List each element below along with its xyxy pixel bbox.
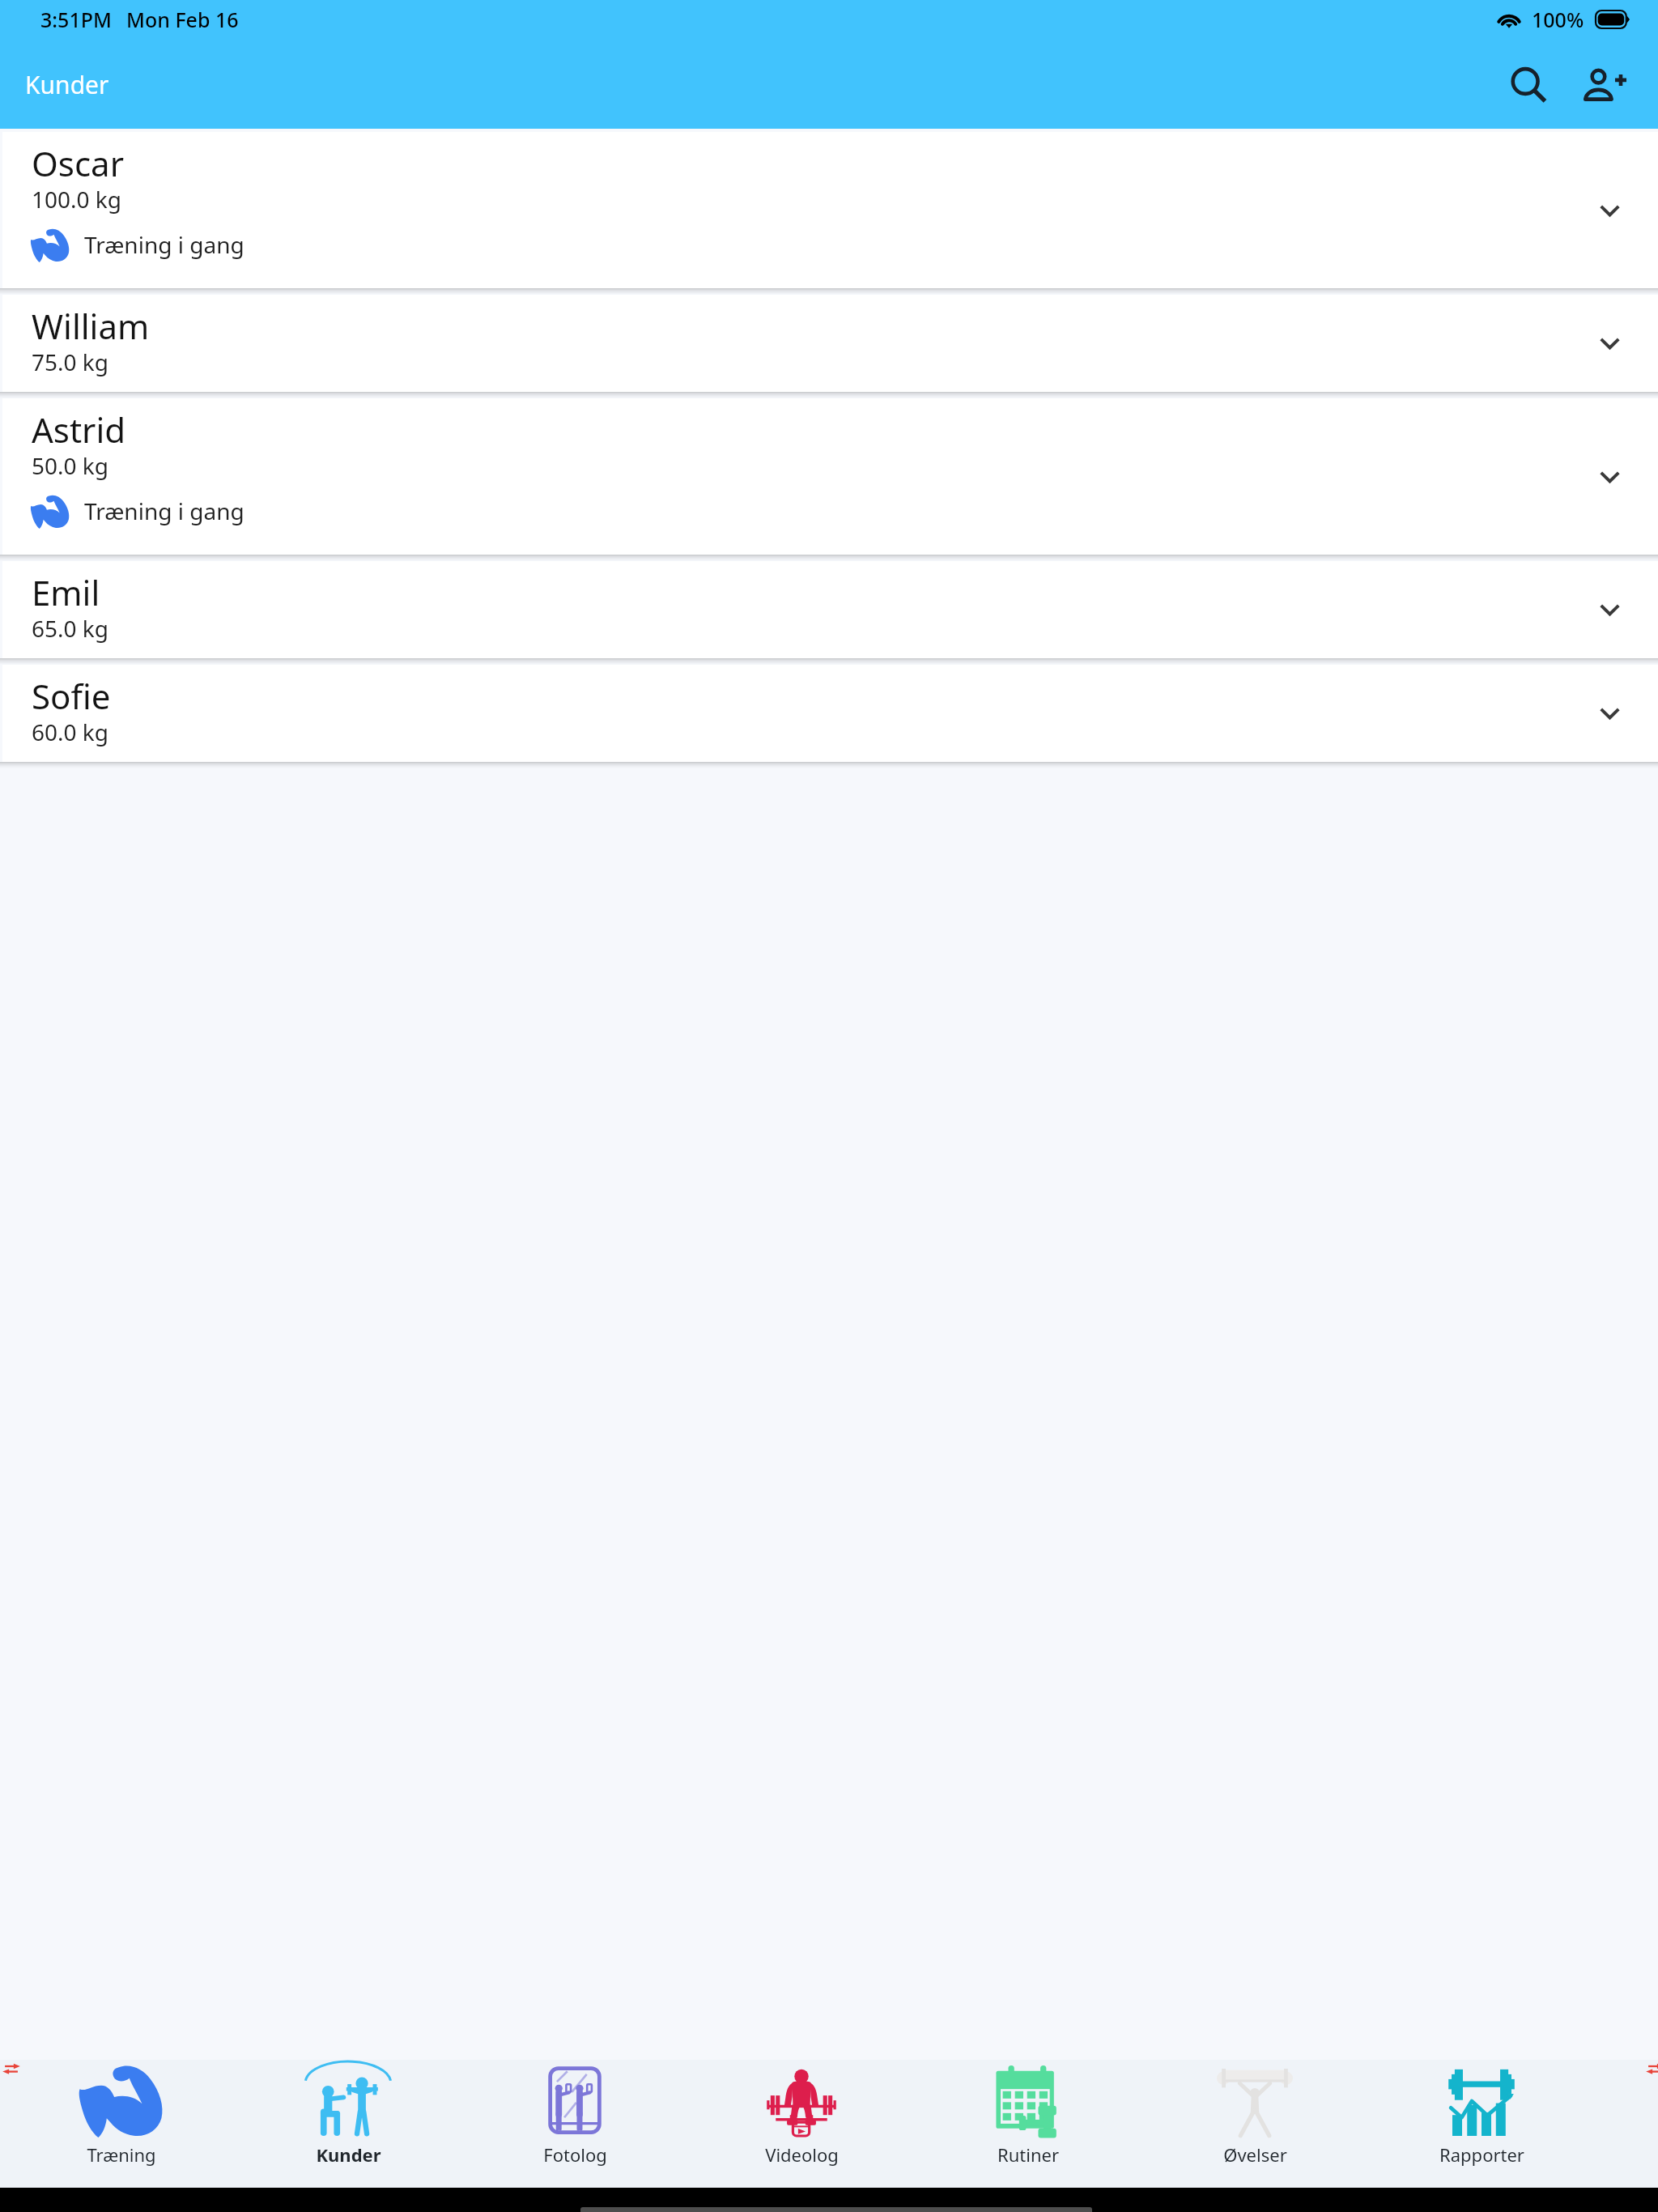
button[interactable]: Add client	[1569, 51, 1640, 122]
staticText: Mon Feb 16	[126, 6, 239, 33]
staticText: 50.0 kg	[32, 450, 109, 481]
staticText: Træning i gang	[84, 496, 244, 526]
staticText: Sofie	[32, 673, 111, 719]
staticText: 100%	[1532, 6, 1584, 33]
staticText: Rutiner	[997, 2142, 1059, 2167]
button[interactable]: Expand	[1571, 439, 1647, 515]
staticText: Videolog	[765, 2142, 839, 2167]
button[interactable]: Øvelser	[1141, 2060, 1368, 2188]
staticText: Kunder	[25, 68, 109, 101]
staticText: Emil	[32, 569, 100, 615]
button[interactable]: Expand	[1571, 172, 1647, 249]
button[interactable]: Rapporter	[1368, 2060, 1595, 2188]
button[interactable]: Kunder	[235, 2060, 461, 2188]
button[interactable]: Rutiner	[915, 2060, 1141, 2188]
staticText: Træning i gang	[84, 229, 244, 260]
button[interactable]: William	[2, 295, 1658, 392]
staticText: Astrid	[32, 406, 126, 453]
staticText: Rapporter	[1439, 2142, 1524, 2167]
staticText: Kunder	[316, 2142, 381, 2167]
staticText: Fotolog	[543, 2142, 607, 2167]
button[interactable]: Sofie	[2, 665, 1658, 762]
staticText: 75.0 kg	[32, 347, 109, 377]
button[interactable]: Fotolog	[461, 2060, 688, 2188]
button[interactable]: Expand	[1571, 572, 1647, 648]
staticText: Oscar	[32, 140, 124, 186]
button[interactable]: Oscar	[2, 132, 1658, 288]
button[interactable]: Search	[1494, 51, 1565, 122]
button[interactable]: Træning	[8, 2060, 235, 2188]
staticText: Træning	[87, 2142, 156, 2167]
staticText: 60.0 kg	[32, 717, 109, 747]
staticText: 65.0 kg	[32, 613, 109, 644]
staticText: William	[32, 303, 150, 349]
button[interactable]: Emil	[2, 561, 1658, 658]
button[interactable]: Astrid	[2, 398, 1658, 555]
button[interactable]: Expand	[1571, 675, 1647, 751]
button[interactable]: Expand	[1571, 305, 1647, 381]
button[interactable]: Videolog	[688, 2060, 915, 2188]
staticText: 3:51PM	[40, 6, 112, 33]
staticText: Øvelser	[1223, 2142, 1287, 2167]
staticText: 100.0 kg	[32, 184, 122, 215]
